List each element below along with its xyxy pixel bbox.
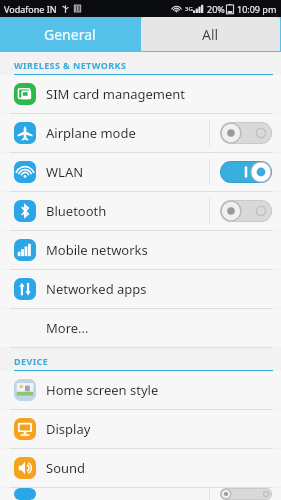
button[interactable]: SIM card management [0, 75, 281, 113]
staticText: More... [46, 319, 89, 337]
button[interactable]: More... [0, 309, 281, 347]
staticText: Display [46, 420, 91, 438]
staticText: SIM card management [46, 85, 186, 103]
button[interactable]: Toggle Bluetooth [220, 200, 272, 222]
staticText: Sound [46, 459, 86, 477]
button[interactable]: Toggle Airplane mode [220, 122, 272, 144]
staticText: 10:09 pm [237, 3, 277, 15]
button[interactable]: Toggle WLAN [220, 161, 272, 183]
button[interactable]: WLAN [0, 153, 281, 191]
button[interactable]: Networked apps [0, 270, 281, 308]
staticText: 3G [185, 5, 193, 13]
staticText: Networked apps [46, 280, 147, 298]
staticText: Bluetooth [46, 202, 107, 220]
button[interactable]: General [0, 17, 140, 52]
staticText: WLAN [46, 163, 84, 181]
staticText: Vodafone IN [4, 3, 57, 15]
staticText: General [44, 25, 96, 44]
button[interactable]: Sound [0, 449, 281, 487]
button[interactable]: Toggle [220, 488, 272, 500]
staticText: 20% [207, 3, 225, 15]
staticText: Airplane mode [46, 124, 136, 142]
button[interactable]: All [140, 17, 281, 52]
button[interactable]: Airplane mode [0, 114, 281, 152]
staticText: All [202, 25, 219, 44]
staticText: DEVICE [14, 355, 49, 367]
button[interactable]: Toggle [0, 488, 281, 500]
staticText: Mobile networks [46, 241, 148, 259]
staticText: Home screen style [46, 381, 159, 399]
button[interactable]: Display [0, 410, 281, 448]
button[interactable]: Home screen style [0, 371, 281, 409]
button[interactable]: Bluetooth [0, 192, 281, 230]
button[interactable]: Mobile networks [0, 231, 281, 269]
staticText: WIRELESS & NETWORKS [14, 59, 127, 71]
